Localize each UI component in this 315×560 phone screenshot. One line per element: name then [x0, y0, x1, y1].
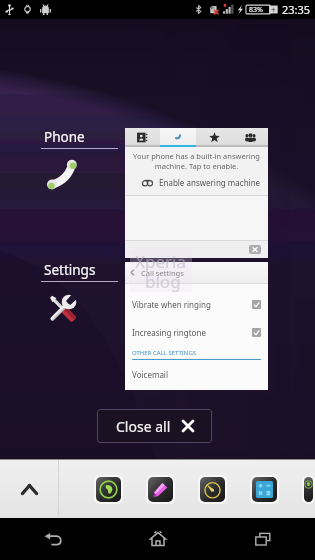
staticText: OTHER CALL SETTINGS: [132, 349, 197, 357]
staticText: 23:35: [282, 2, 311, 17]
staticText: Your phone has a built-in answering mach…: [125, 151, 268, 171]
button[interactable]: Phone: [41, 128, 118, 192]
staticText: 83%: [249, 5, 263, 15]
staticText: +: [271, 4, 276, 15]
button[interactable]: [125, 128, 160, 147]
button[interactable]: Voicemail: [125, 360, 268, 388]
staticText: Vibrate when ringing: [132, 299, 211, 310]
staticText: Xperia: [135, 250, 186, 273]
button[interactable]: Vibrate when ringing: [125, 290, 268, 318]
button[interactable]: Settings: [41, 261, 118, 325]
button[interactable]: Recent apps: [210, 518, 315, 560]
button[interactable]: Call settings: [125, 262, 268, 390]
button[interactable]: [232, 128, 268, 147]
button[interactable]: [160, 128, 196, 147]
staticText: Close all: [116, 417, 171, 436]
button[interactable]: Back: [0, 518, 105, 560]
button[interactable]: Browser: [96, 477, 121, 502]
button[interactable]: Close all: [97, 409, 212, 443]
staticText: Enable answering machine: [159, 177, 261, 188]
button[interactable]: Voice recorder: [304, 477, 313, 502]
staticText: Call settings: [141, 268, 184, 278]
button[interactable]: [196, 128, 232, 147]
staticText: blog: [145, 270, 181, 293]
staticText: Phone: [44, 128, 85, 146]
button[interactable]: Expand small apps: [0, 460, 58, 518]
button[interactable]: Your phone has a built-in answering mach…: [125, 128, 268, 258]
button[interactable]: Calculator: [252, 477, 277, 502]
button[interactable]: Home: [105, 518, 210, 560]
button[interactable]: Notes: [148, 477, 173, 502]
button[interactable]: Increasing ringtone: [125, 318, 268, 346]
button[interactable]: Enable answering machine: [142, 177, 268, 188]
staticText: Voicemail: [132, 369, 168, 380]
staticText: Settings: [44, 261, 96, 279]
staticText: Increasing ringtone: [132, 327, 206, 338]
button[interactable]: Timer: [200, 477, 225, 502]
